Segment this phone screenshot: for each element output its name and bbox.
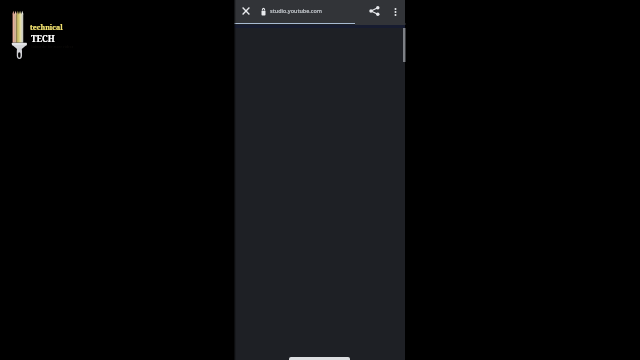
button[interactable]: More options (385, 2, 405, 22)
button[interactable]: Share (364, 1, 384, 21)
staticText: TECH (31, 33, 55, 45)
staticText: studio.youtube.com (270, 7, 322, 14)
staticText: technical (30, 23, 63, 33)
button[interactable]: Close (236, 1, 256, 21)
